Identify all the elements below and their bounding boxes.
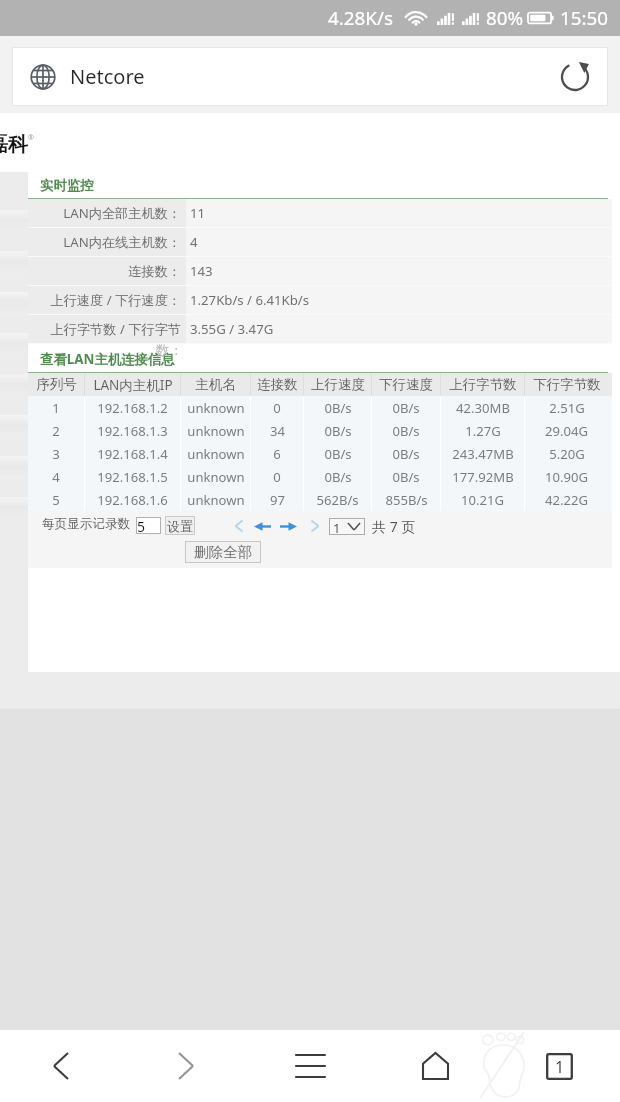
staticText: 设置: [167, 518, 193, 534]
staticText: 下行字节数: [533, 376, 601, 393]
staticText: 10.90G: [545, 468, 588, 486]
staticText: 2: [52, 422, 60, 440]
staticText: 6: [273, 445, 281, 463]
staticText: 0B/s: [324, 422, 352, 440]
staticText: 42.30MB: [456, 399, 510, 417]
staticText: unknown: [187, 422, 245, 440]
staticText: 0B/s: [392, 422, 420, 440]
staticText: 5.20G: [549, 445, 585, 463]
staticText: 下行速度: [379, 376, 433, 393]
button[interactable]: Incognito mode: [474, 1030, 534, 1102]
staticText: 查看LAN主机连接信息: [40, 350, 175, 368]
staticText: 连接数：: [128, 263, 181, 280]
staticText: 共 7 页: [372, 517, 416, 536]
staticText: 1: [333, 519, 341, 536]
staticText: unknown: [187, 491, 245, 509]
staticText: 删除全部: [194, 543, 252, 561]
button[interactable]: Back: [31, 1030, 91, 1102]
staticText: Netcore: [70, 63, 145, 90]
staticText: 15:50: [560, 5, 609, 31]
staticText: 192.168.1.5: [97, 468, 168, 486]
staticText: 3.55G / 3.47G: [190, 320, 274, 338]
staticText: 上行速度: [311, 376, 365, 393]
staticText: LAN内在线主机数：: [63, 233, 181, 251]
button[interactable]: Next page: [277, 515, 299, 537]
staticText: 连接数: [257, 376, 298, 393]
staticText: 29.04G: [545, 422, 588, 440]
staticText: 0: [273, 468, 281, 486]
button[interactable]: First page: [228, 515, 250, 537]
staticText: LAN内主机IP: [93, 376, 173, 394]
staticText: 192.168.1.4: [97, 445, 168, 463]
staticText: unknown: [187, 445, 245, 463]
button[interactable]: Tabs: [529, 1030, 589, 1102]
staticText: 97: [270, 491, 285, 509]
staticText: 192.168.1.6: [97, 491, 168, 509]
staticText: 磊科: [0, 132, 28, 157]
button[interactable]: Reload page: [556, 58, 594, 96]
button[interactable]: 1: [329, 518, 365, 535]
staticText: 192.168.1.3: [97, 422, 168, 440]
button[interactable]: Menu: [280, 1030, 340, 1102]
staticText: 177.92MB: [452, 468, 514, 486]
staticText: 0B/s: [392, 399, 420, 417]
staticText: 0B/s: [324, 445, 352, 463]
staticText: 序列号: [36, 376, 77, 393]
staticText: 42.22G: [545, 491, 588, 509]
staticText: 上行速度 / 下行速度：: [50, 291, 181, 309]
staticText: 实时监控: [40, 177, 94, 194]
staticText: 243.47MB: [452, 445, 514, 463]
staticText: 主机名: [195, 376, 236, 393]
staticText: 192.168.1.2: [97, 399, 168, 417]
staticText: 数：: [156, 342, 183, 359]
staticText: 855B/s: [385, 491, 428, 509]
staticText: 4: [190, 233, 198, 251]
button[interactable]: Forward: [156, 1030, 216, 1102]
staticText: 4: [52, 468, 60, 486]
button[interactable]: 删除全部: [185, 541, 261, 563]
staticText: 上行字节数 / 下行字节: [50, 320, 181, 338]
button[interactable]: Netcore: [12, 47, 608, 106]
button[interactable]: Home: [405, 1030, 465, 1102]
staticText: unknown: [187, 468, 245, 486]
staticText: 11: [190, 204, 206, 222]
staticText: 2.51G: [549, 399, 585, 417]
staticText: 4.28K/s: [328, 5, 393, 31]
button[interactable]: 设置: [165, 516, 195, 535]
staticText: ®: [28, 133, 34, 143]
staticText: 5: [52, 491, 60, 509]
staticText: 0B/s: [324, 468, 352, 486]
staticText: 1: [52, 399, 60, 417]
button[interactable]: 5: [136, 517, 161, 534]
staticText: 10.21G: [461, 491, 504, 509]
staticText: 每页显示记录数: [42, 516, 131, 532]
staticText: 80%: [486, 5, 524, 31]
staticText: 143: [190, 262, 213, 280]
staticText: 上行字节数: [449, 376, 517, 393]
staticText: LAN内全部主机数：: [63, 204, 181, 222]
staticText: 0B/s: [324, 399, 352, 417]
button[interactable]: Previous page: [251, 515, 273, 537]
staticText: unknown: [187, 399, 245, 417]
staticText: 0B/s: [392, 445, 420, 463]
staticText: 0B/s: [392, 468, 420, 486]
staticText: 562B/s: [316, 491, 359, 509]
staticText: 1.27G: [465, 422, 501, 440]
button[interactable]: Last page: [304, 515, 326, 537]
staticText: 34: [270, 422, 285, 440]
staticText: 1.27Kb/s / 6.41Kb/s: [190, 291, 310, 309]
staticText: 3: [52, 445, 60, 463]
staticText: 5: [137, 517, 146, 534]
staticText: 0: [273, 399, 281, 417]
staticText: 1: [555, 1056, 565, 1078]
